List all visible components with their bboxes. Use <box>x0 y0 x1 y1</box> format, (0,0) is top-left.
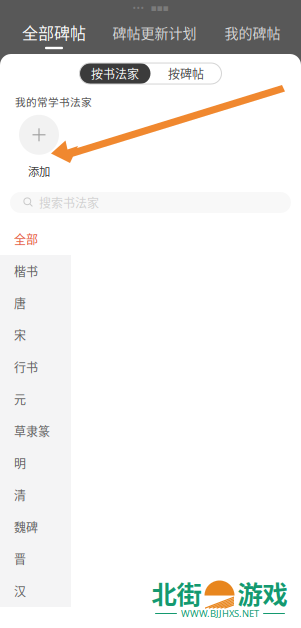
button[interactable]: 汉 <box>0 575 71 607</box>
button[interactable]: 搜索书法家 <box>10 192 291 213</box>
button[interactable]: 行书 <box>0 351 71 383</box>
staticText: 添加 <box>28 163 50 179</box>
staticText: 我的常学书法家 <box>15 94 92 109</box>
staticText: 草隶篆 <box>14 422 50 440</box>
button[interactable]: 碑帖更新计划 <box>112 23 196 49</box>
button[interactable]: 晋 <box>0 543 71 575</box>
staticText: 清 <box>14 486 26 504</box>
staticText: 按书法家 <box>91 65 139 82</box>
button[interactable]: 魏碑 <box>0 511 71 543</box>
staticText: 行书 <box>14 358 38 376</box>
staticText: 明 <box>14 454 26 472</box>
staticText: 碑帖更新计划 <box>112 22 196 42</box>
button[interactable]: 按碑帖 <box>150 63 221 84</box>
staticText: WWW.BJJHXS.NET <box>181 607 259 620</box>
staticText: 按碑帖 <box>168 65 204 82</box>
staticText: 全部 <box>14 230 38 248</box>
button[interactable]: 按书法家 <box>79 63 150 84</box>
staticText: 我的碑帖 <box>224 22 280 42</box>
staticText: 元 <box>14 390 26 408</box>
staticText: 北街 <box>151 575 201 611</box>
button[interactable]: 全部碑帖 <box>21 23 87 49</box>
staticText: 魏碑 <box>14 518 38 536</box>
button[interactable]: 宋 <box>0 319 71 351</box>
staticText: 游戏 <box>237 575 287 611</box>
button[interactable]: 明 <box>0 447 71 479</box>
staticText: 汉 <box>14 582 26 600</box>
button[interactable]: 添加 <box>15 115 63 179</box>
staticText: 晋 <box>14 550 26 568</box>
button[interactable]: 清 <box>0 479 71 511</box>
staticText: 楷书 <box>14 262 38 280</box>
staticText: 宋 <box>14 326 26 344</box>
button[interactable]: 我的碑帖 <box>222 23 283 49</box>
staticText: 全部碑帖 <box>22 21 86 44</box>
button[interactable]: 楷书 <box>0 255 71 287</box>
button[interactable]: 唐 <box>0 287 71 319</box>
button[interactable]: 元 <box>0 383 71 415</box>
button[interactable]: 草隶篆 <box>0 415 71 447</box>
button[interactable]: 全部 <box>0 223 71 255</box>
staticText: 唐 <box>14 294 26 312</box>
staticText: ••• ▪▪▪ <box>132 1 168 14</box>
staticText: 搜索书法家 <box>39 194 99 211</box>
